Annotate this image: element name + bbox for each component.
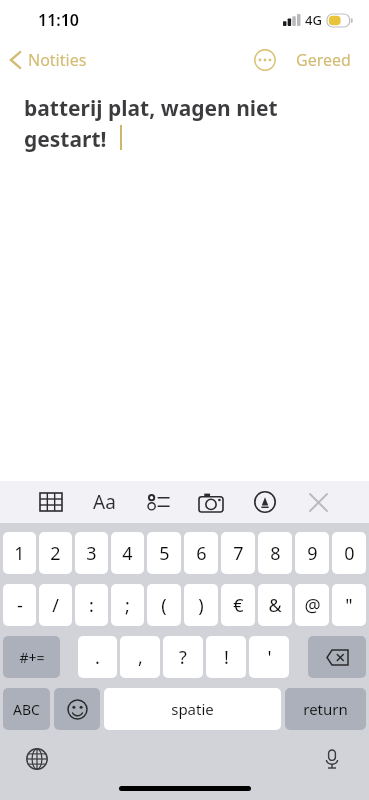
- button[interactable]: Emoji: [54, 688, 100, 730]
- button[interactable]: 7: [221, 532, 255, 574]
- button[interactable]: Dictation: [315, 742, 349, 776]
- staticText: ABC: [13, 700, 40, 719]
- button[interactable]: Close keyboard: [301, 485, 335, 519]
- button[interactable]: Markup: [248, 485, 282, 519]
- staticText: ;: [125, 593, 130, 618]
- button[interactable]: 9: [295, 532, 329, 574]
- staticText: 9: [307, 541, 318, 566]
- staticText: spatie: [171, 699, 214, 719]
- button[interactable]: 4: [111, 532, 144, 574]
- button[interactable]: Checklist: [141, 485, 175, 519]
- button[interactable]: ;: [111, 584, 144, 626]
- button[interactable]: Change keyboard: [20, 742, 54, 776]
- button[interactable]: Table: [34, 485, 68, 519]
- staticText: ': [267, 645, 272, 670]
- staticText: 8: [270, 541, 281, 566]
- staticText: 3: [86, 541, 97, 566]
- button[interactable]: ": [332, 584, 366, 626]
- staticText: .: [95, 645, 100, 670]
- button[interactable]: 6: [184, 532, 218, 574]
- staticText: @: [304, 593, 321, 618]
- staticText: (: [161, 593, 167, 618]
- button[interactable]: 8: [258, 532, 292, 574]
- staticText: Gereed: [296, 49, 351, 71]
- staticText: -: [17, 593, 23, 618]
- staticText: /: [52, 593, 59, 618]
- staticText: 4G: [305, 11, 322, 29]
- staticText: 4: [122, 541, 133, 566]
- staticText: €: [233, 593, 244, 618]
- button[interactable]: spatie: [104, 688, 281, 730]
- button[interactable]: &: [258, 584, 292, 626]
- staticText: #+=: [19, 648, 45, 667]
- staticText: :: [89, 593, 94, 618]
- staticText: 11:10: [38, 9, 80, 31]
- button[interactable]: .: [78, 636, 117, 678]
- button[interactable]: ABC: [3, 688, 50, 730]
- button[interactable]: ': [249, 636, 289, 678]
- staticText: &: [268, 593, 282, 618]
- staticText: ": [345, 593, 353, 618]
- button[interactable]: Camera: [194, 485, 228, 519]
- staticText: 6: [196, 541, 207, 566]
- button[interactable]: 3: [75, 532, 108, 574]
- button[interactable]: 0: [332, 532, 366, 574]
- button[interactable]: (: [147, 584, 181, 626]
- button[interactable]: -: [3, 584, 36, 626]
- button[interactable]: 2: [39, 532, 72, 574]
- staticText: Aa: [93, 489, 116, 515]
- button[interactable]: !: [206, 636, 246, 678]
- button[interactable]: 5: [147, 532, 181, 574]
- button[interactable]: ?: [163, 636, 203, 678]
- staticText: 1: [14, 541, 25, 566]
- button[interactable]: ): [184, 584, 218, 626]
- staticText: 2: [50, 541, 61, 566]
- button[interactable]: :: [75, 584, 108, 626]
- button[interactable]: Gereed: [288, 43, 359, 77]
- button[interactable]: More options: [248, 43, 282, 77]
- button[interactable]: @: [295, 584, 329, 626]
- button[interactable]: Text format: [87, 485, 121, 519]
- staticText: !: [224, 645, 229, 670]
- button[interactable]: Notities: [0, 43, 97, 77]
- button[interactable]: Backspace: [308, 636, 366, 678]
- button[interactable]: ,: [120, 636, 160, 678]
- staticText: ): [198, 593, 204, 618]
- staticText: return: [303, 699, 348, 719]
- button[interactable]: #+=: [3, 636, 60, 678]
- staticText: 5: [159, 541, 170, 566]
- button[interactable]: €: [221, 584, 255, 626]
- button[interactable]: /: [39, 584, 72, 626]
- staticText: ,: [138, 645, 143, 670]
- staticText: batterij plat, wagen niet gestart!: [24, 94, 278, 153]
- button[interactable]: return: [285, 688, 366, 730]
- staticText: Notities: [28, 49, 87, 71]
- staticText: 0: [344, 541, 355, 566]
- staticText: 7: [233, 541, 244, 566]
- staticText: ?: [179, 645, 187, 670]
- button[interactable]: 1: [3, 532, 36, 574]
